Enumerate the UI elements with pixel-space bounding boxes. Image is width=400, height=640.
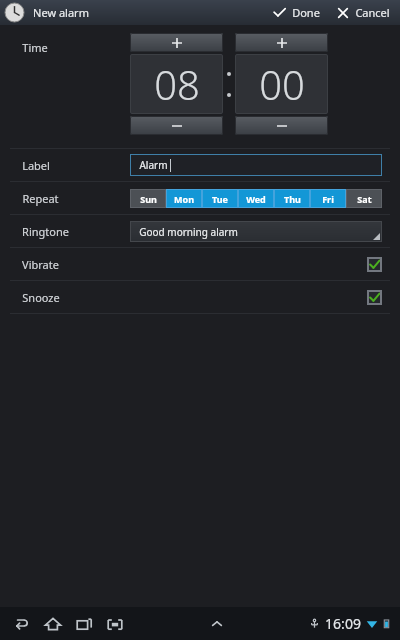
other: Wi-Fi	[366, 618, 378, 630]
other: USB	[309, 618, 320, 629]
button[interactable]: Decrement	[130, 116, 223, 135]
staticText: 00	[259, 57, 305, 111]
staticText: Cancel	[355, 5, 390, 20]
staticText: 08	[154, 57, 200, 111]
staticText: Vibrate	[22, 257, 59, 272]
button[interactable]: Alarm	[130, 154, 382, 176]
staticText: Ringtone	[22, 224, 69, 239]
staticText: Sat	[357, 193, 372, 205]
staticText: Tue	[212, 193, 228, 205]
staticText: Thu	[284, 193, 301, 205]
staticText: Good morning alarm	[139, 225, 238, 239]
button[interactable]: Done	[269, 1, 324, 24]
button[interactable]: Good morning alarm	[130, 221, 382, 242]
button[interactable]: Increment	[130, 33, 223, 52]
staticText: Label	[22, 158, 50, 173]
other: Vibrate	[367, 257, 382, 272]
button[interactable]: Cancel	[333, 1, 394, 24]
staticText: Fri	[322, 193, 334, 205]
staticText: Alarm	[139, 158, 168, 172]
button[interactable]: Mon	[166, 189, 202, 208]
other: Battery	[381, 618, 392, 629]
other: Snooze	[367, 290, 382, 305]
button[interactable]: Expand	[208, 615, 226, 633]
button[interactable]: Home	[43, 614, 63, 634]
button[interactable]: Screenshot	[105, 614, 125, 634]
button[interactable]: Sat	[346, 189, 382, 208]
staticText: Snooze	[22, 290, 60, 305]
button[interactable]: Sun	[130, 189, 166, 208]
staticText: Done	[292, 5, 320, 20]
button[interactable]: Tue	[202, 189, 238, 208]
button[interactable]: Increment	[235, 33, 328, 52]
button[interactable]: Thu	[274, 189, 310, 208]
staticText: 16:09	[325, 614, 361, 633]
button[interactable]: Back	[12, 614, 32, 634]
button[interactable]: Wed	[238, 189, 274, 208]
staticText: Time	[22, 40, 48, 55]
button[interactable]: Vibrate	[0, 248, 400, 280]
staticText: Repeat	[22, 191, 59, 206]
staticText: New alarm	[33, 5, 89, 20]
staticText: Wed	[246, 193, 266, 205]
button[interactable]: Decrement	[235, 116, 328, 135]
staticText: Sun	[140, 193, 157, 205]
staticText: Mon	[174, 193, 194, 205]
button[interactable]: Fri	[310, 189, 346, 208]
button[interactable]: Recents	[74, 614, 94, 634]
button[interactable]: Snooze	[0, 281, 400, 313]
